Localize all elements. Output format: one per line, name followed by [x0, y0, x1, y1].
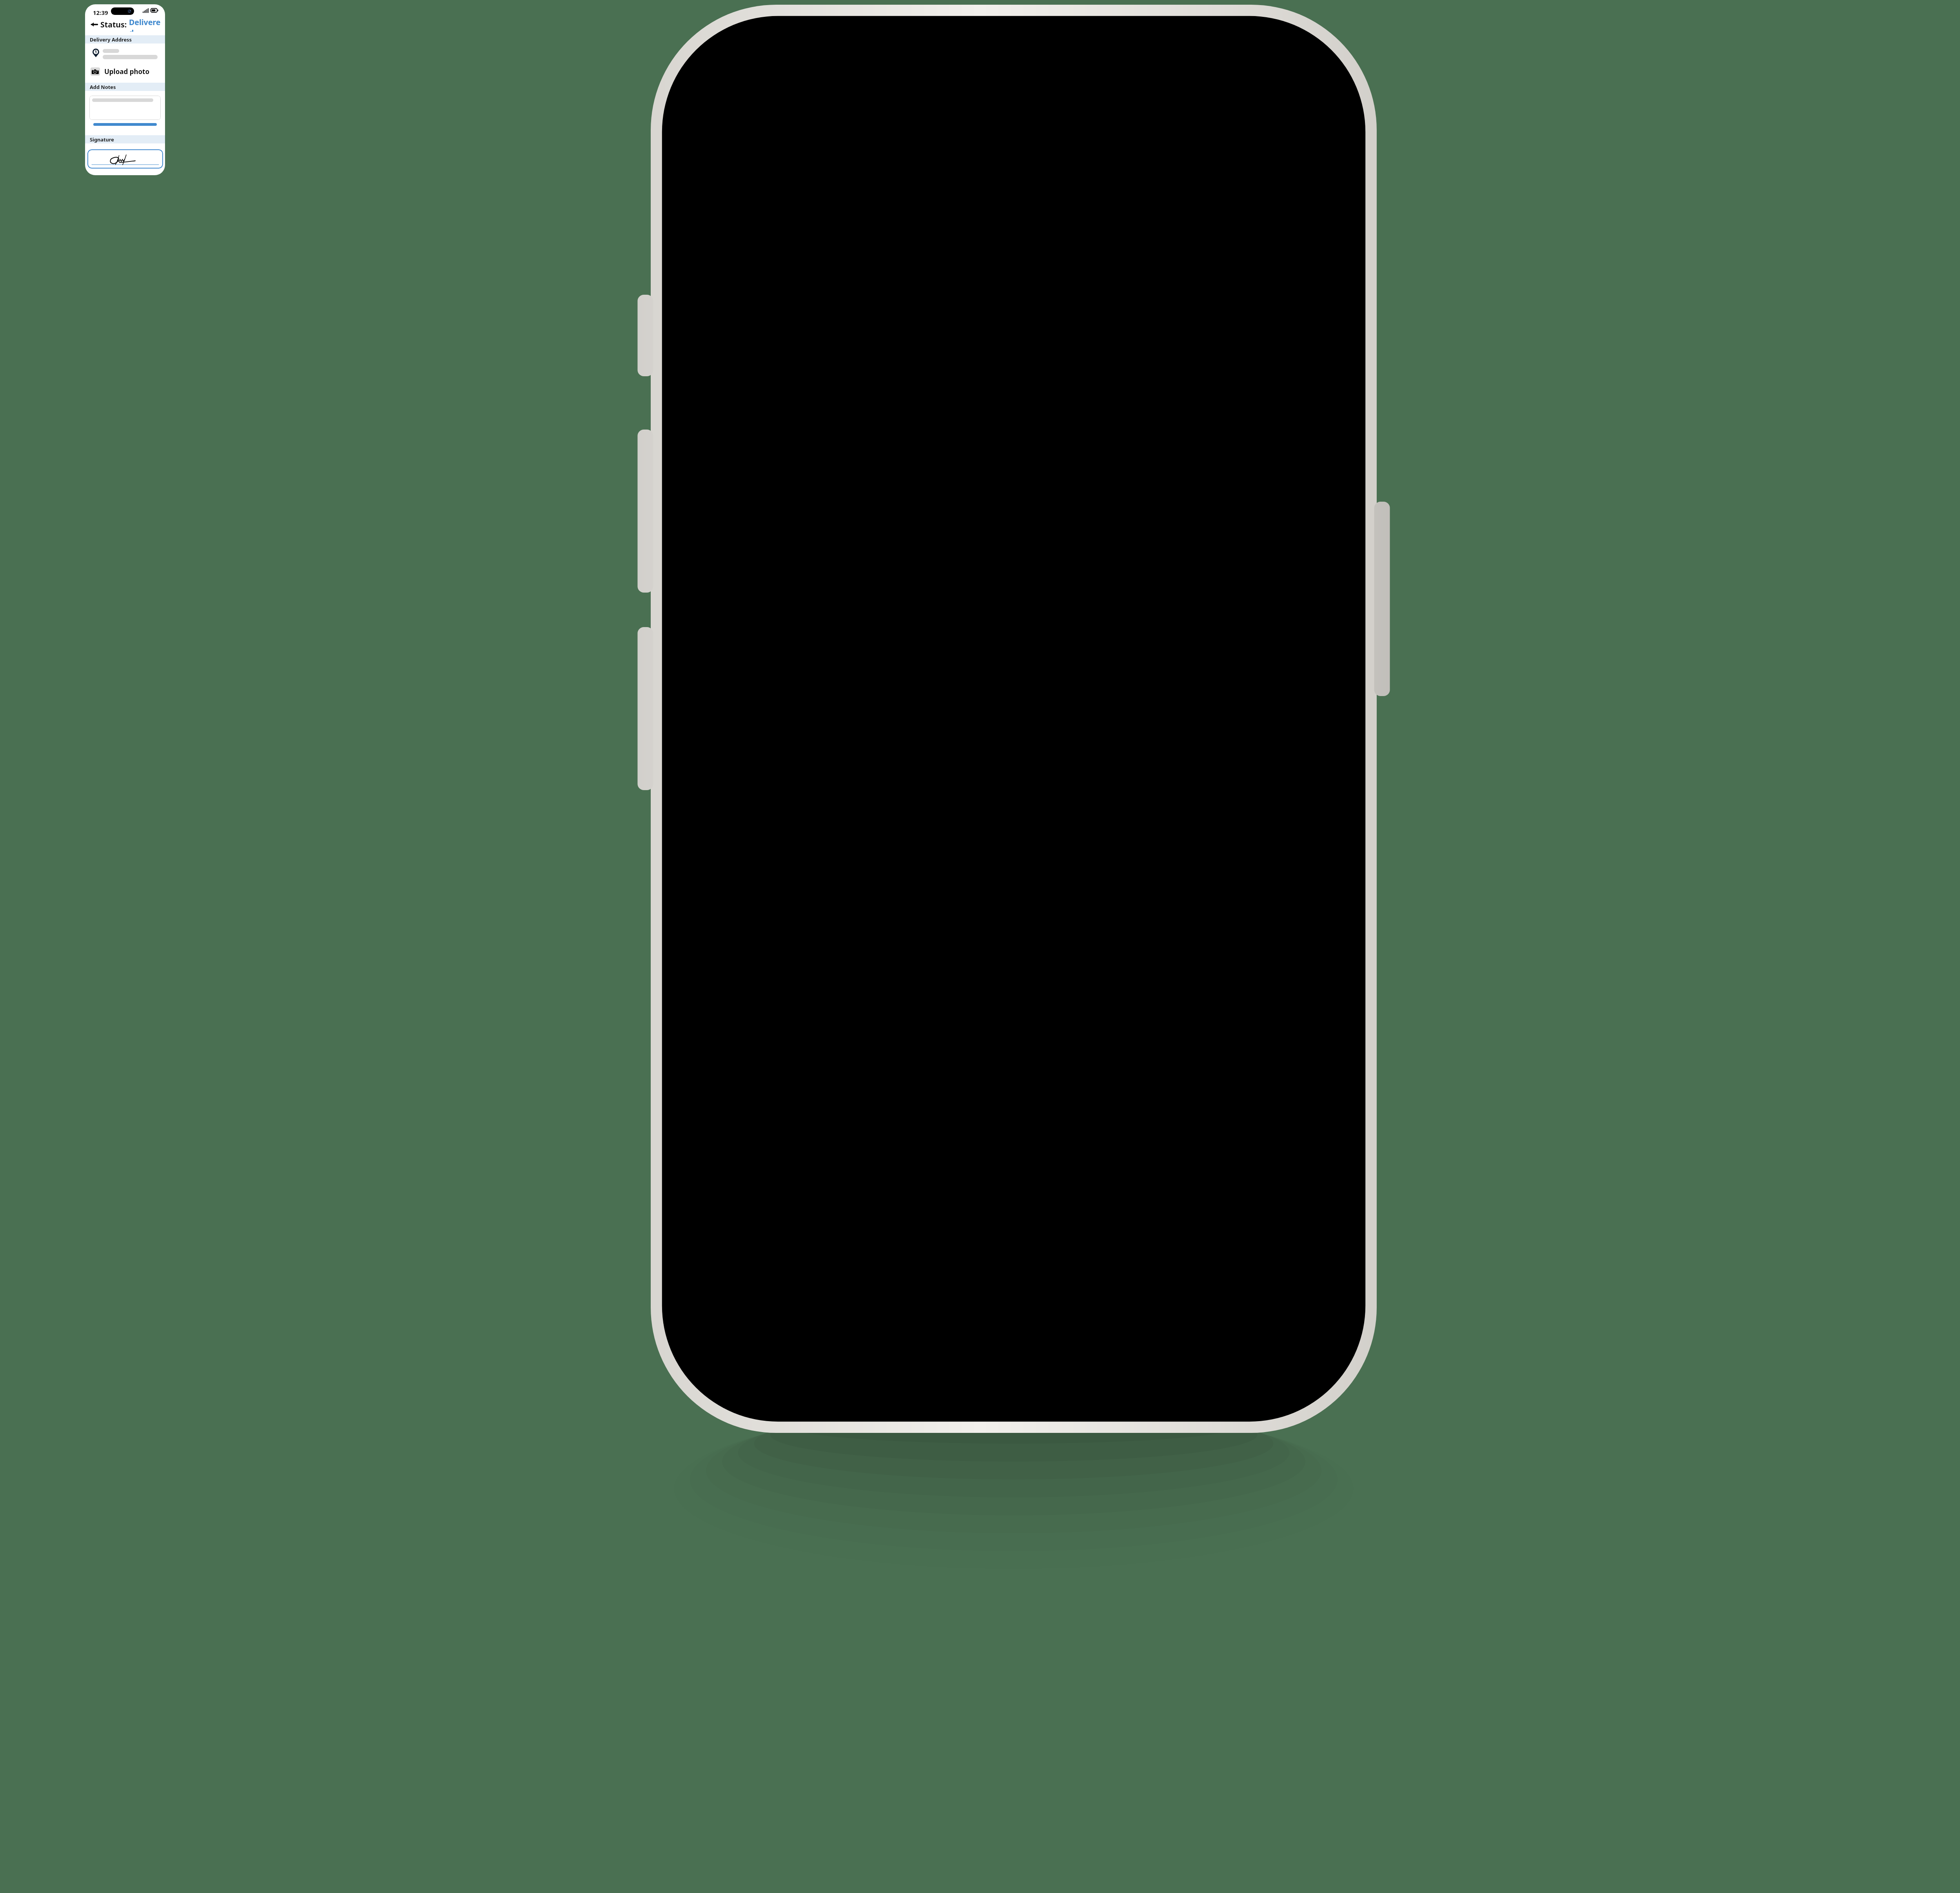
- staticText: Upload photo: [104, 67, 150, 76]
- button[interactable]: Upload photo: [91, 67, 152, 76]
- button[interactable]: Back: [90, 20, 98, 28]
- staticText: Delivery Address: [90, 36, 132, 43]
- button[interactable]: Signature: [87, 149, 163, 169]
- staticText: 12:39: [93, 9, 108, 16]
- staticText: Signature: [90, 136, 114, 143]
- button[interactable]: [89, 96, 161, 120]
- staticText: Status:: [100, 19, 129, 30]
- button[interactable]: Submit notes: [93, 123, 157, 126]
- staticText: Add Notes: [90, 83, 116, 90]
- staticText: Delivered: [129, 17, 165, 32]
